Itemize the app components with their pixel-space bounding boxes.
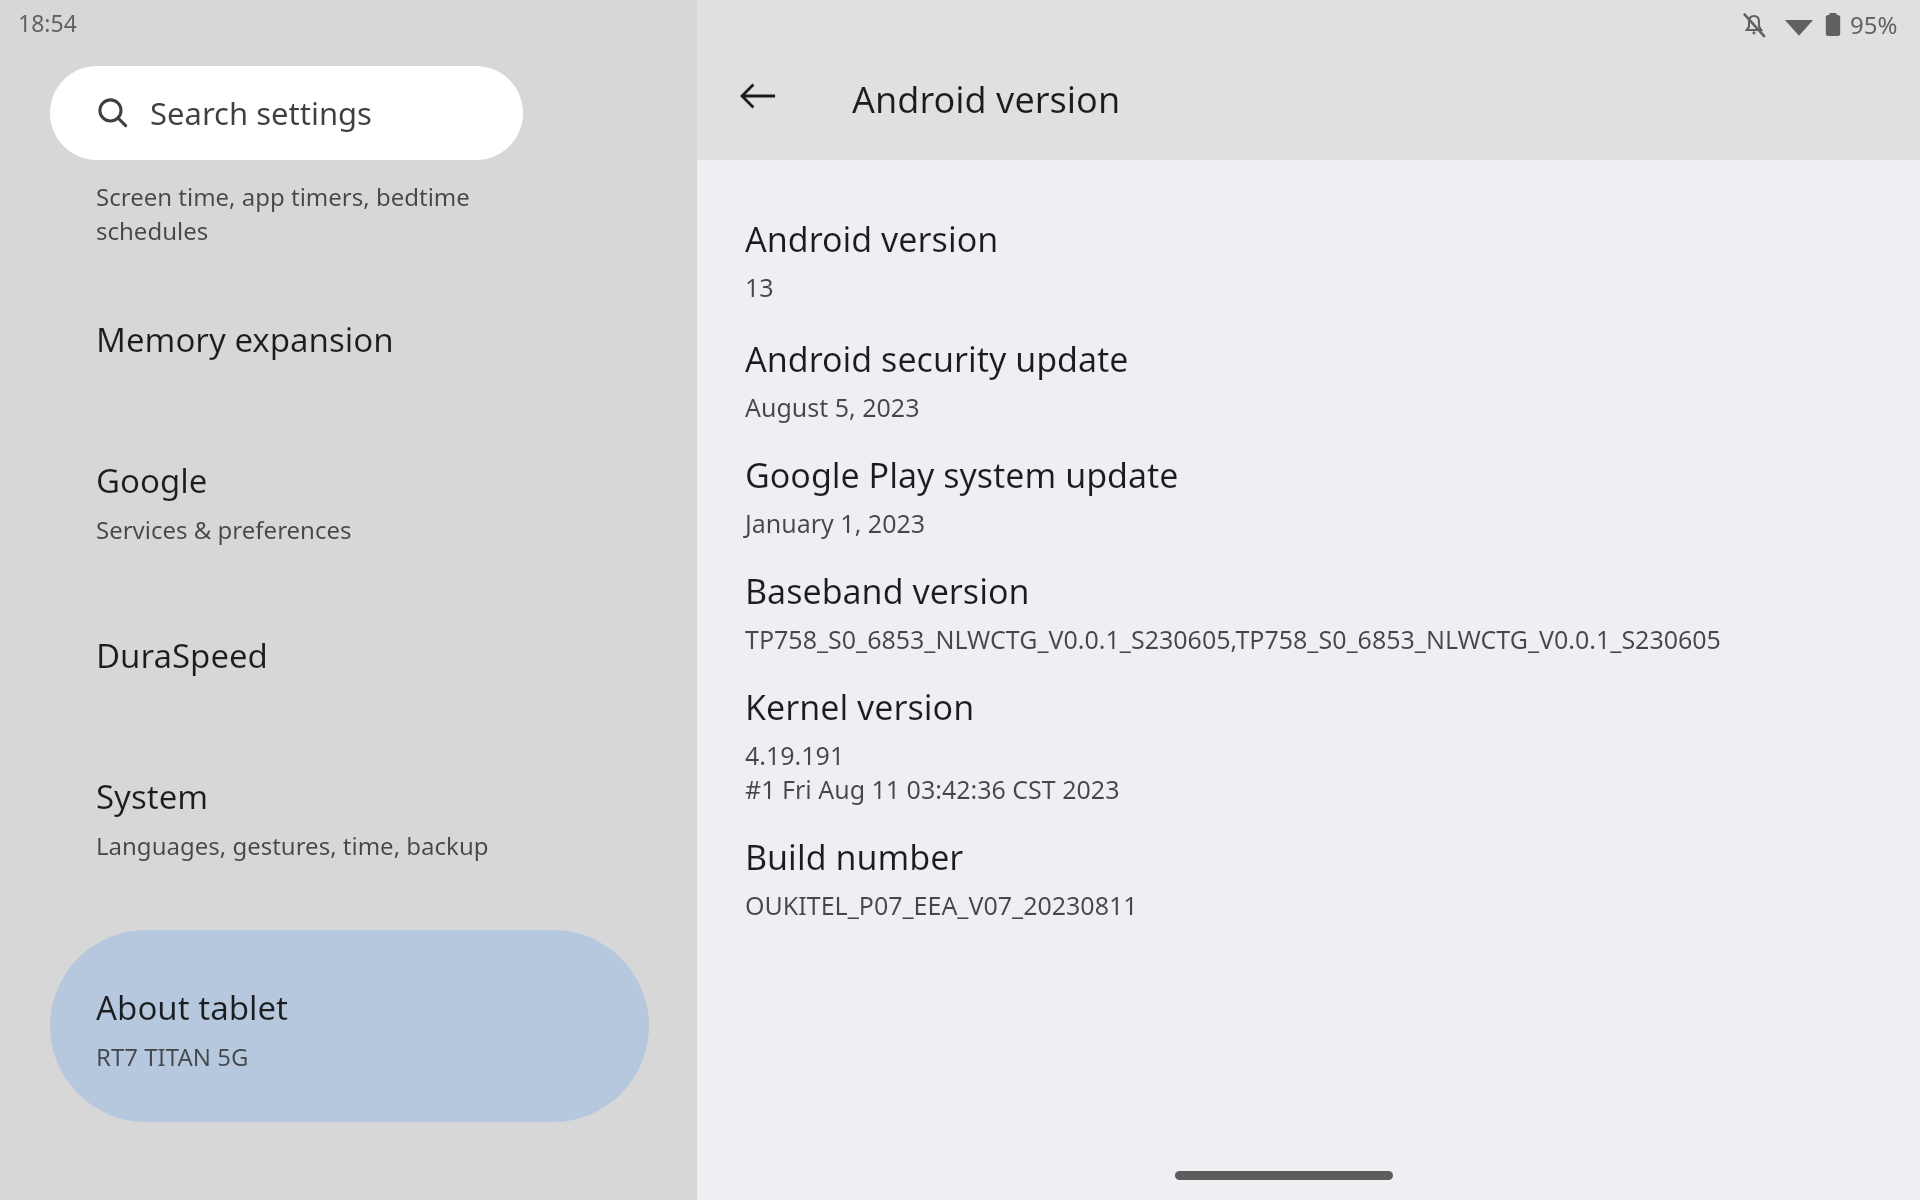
button[interactable]: Memory expansion xyxy=(0,272,697,430)
staticText: Services & preferences xyxy=(96,513,352,546)
staticText: Search settings xyxy=(150,92,372,134)
staticText: Android version xyxy=(852,75,1121,124)
button[interactable]: Search settings xyxy=(50,66,523,160)
staticText: RT7 TITAN 5G xyxy=(96,1040,249,1073)
button[interactable]: Android security update xyxy=(697,304,1920,424)
staticText: System xyxy=(96,774,209,819)
staticText: Kernel version xyxy=(745,684,975,730)
button[interactable]: Google Play system update xyxy=(697,424,1920,540)
staticText: 4.19.191 xyxy=(745,738,845,772)
staticText: TP758_S0_6853_NLWCTG_V0.0.1_S230605,TP75… xyxy=(745,622,1721,656)
staticText: Android security update xyxy=(745,336,1129,382)
button[interactable]: Kernel version xyxy=(697,656,1920,806)
button[interactable]: Google xyxy=(0,430,697,588)
staticText: 18:54 xyxy=(18,7,77,38)
button[interactable]: About tablet xyxy=(50,930,649,1122)
button[interactable]: Android version xyxy=(697,160,1920,304)
button[interactable]: Baseband version xyxy=(697,540,1920,656)
staticText: Android version xyxy=(745,216,999,262)
button[interactable]: Build number xyxy=(697,806,1920,922)
button[interactable]: Back xyxy=(726,64,790,128)
staticText: OUKITEL_P07_EEA_V07_20230811 xyxy=(745,888,1138,922)
staticText: 13 xyxy=(745,270,774,304)
staticText: Google xyxy=(96,458,208,503)
button[interactable]: Screen time, app timers, bedtime schedul… xyxy=(0,160,697,272)
staticText: 95% xyxy=(1850,8,1898,41)
button[interactable]: System xyxy=(0,746,697,904)
button[interactable]: DuraSpeed xyxy=(0,588,697,746)
staticText: Build number xyxy=(745,834,964,880)
staticText: Screen time, app timers, bedtime schedul… xyxy=(96,180,470,247)
staticText: Baseband version xyxy=(745,568,1030,614)
staticText: January 1, 2023 xyxy=(745,506,926,540)
staticText: #1 Fri Aug 11 03:42:36 CST 2023 xyxy=(745,772,1120,806)
staticText: Languages, gestures, time, backup xyxy=(96,829,489,862)
staticText: DuraSpeed xyxy=(96,633,268,678)
staticText: August 5, 2023 xyxy=(745,390,920,424)
staticText: About tablet xyxy=(96,985,288,1030)
staticText: Google Play system update xyxy=(745,452,1179,498)
staticText: Memory expansion xyxy=(96,317,394,362)
